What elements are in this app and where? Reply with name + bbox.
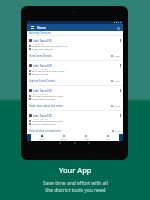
staticText: Activity Stream [29, 31, 51, 35]
staticText: News [84, 138, 89, 141]
button[interactable]: More options [119, 64, 122, 67]
button[interactable]: Lake Travis ISD [27, 61, 123, 85]
staticText: Jan 10 - 8:30 AM [33, 118, 48, 121]
button[interactable]: News [75, 134, 97, 141]
button[interactable]: Lake Travis ISD [27, 36, 123, 60]
button[interactable]: Lake Travis ISD [27, 111, 123, 134]
staticText: Home [39, 138, 45, 141]
button[interactable]: Calendar [53, 134, 75, 141]
staticText: Baseball practice moved to 4:30 [32, 44, 68, 47]
staticText: Jan 14 - 7:00 PM [33, 68, 48, 71]
button[interactable]: Home [31, 134, 53, 141]
staticText: Your App [59, 165, 92, 175]
staticText: Join the meeting now [32, 122, 56, 125]
staticText: 8 likes [114, 105, 121, 108]
staticText: No class tomorrow for staff [32, 94, 63, 97]
button[interactable]: Menu [30, 26, 34, 30]
staticText: Read more about the event [29, 104, 63, 108]
staticText: More [106, 138, 111, 141]
staticText: Lake Travis ISD [33, 114, 52, 118]
staticText: Calendar [60, 138, 68, 141]
staticText: Lake Travis ISD [33, 39, 52, 43]
staticText: Volunteers welcome Friday [32, 119, 63, 122]
staticText: View all district news here [29, 129, 62, 133]
staticText: 2 likes [114, 80, 121, 83]
staticText: View Event Details [29, 54, 52, 58]
button[interactable]: More options [119, 114, 122, 117]
staticText: Early dismissal at noon today [32, 69, 65, 72]
staticText: Save time and effort with all the distri… [43, 180, 108, 193]
staticText: Lake Travis ISD [33, 89, 52, 93]
staticText: Lake Travis ISD [33, 64, 52, 68]
button[interactable]: Lake Travis ISD [27, 86, 123, 110]
button[interactable]: Search [116, 26, 120, 30]
staticText: Jan 12 - 9:00 AM [33, 93, 48, 96]
button[interactable]: More [97, 134, 119, 141]
button[interactable]: More options [119, 89, 122, 92]
staticText: 4 hours ago [33, 43, 45, 46]
staticText: 1 like [115, 130, 121, 133]
staticText: School will be closed [32, 97, 56, 100]
staticText: 4 likes [114, 55, 121, 58]
staticText: Buses on time [32, 72, 48, 75]
staticText: Explore Event Details [29, 79, 56, 83]
staticText: Field trip reminder [32, 47, 53, 50]
button[interactable]: More options [119, 39, 122, 42]
staticText: Home [37, 26, 47, 30]
